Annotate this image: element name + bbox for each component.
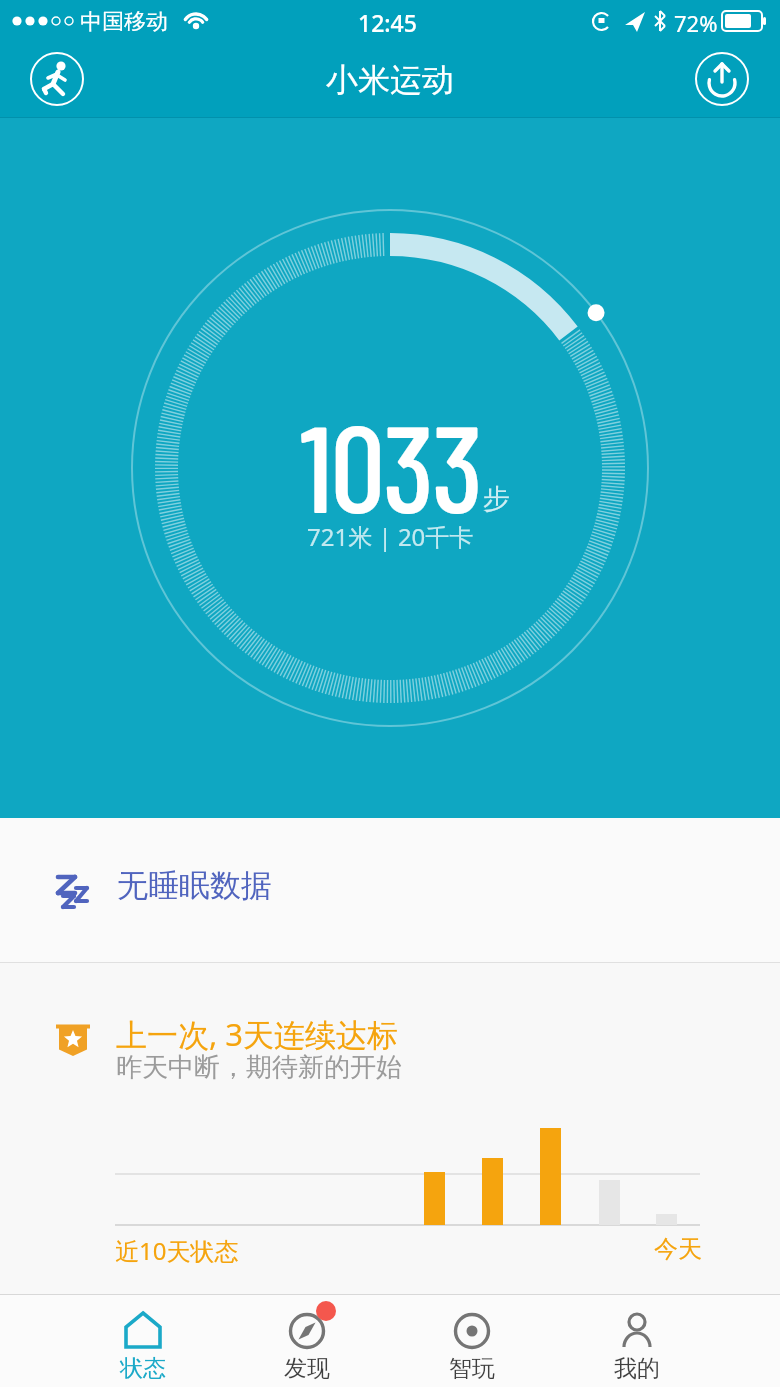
staticText: 中国移动 (80, 8, 168, 36)
button[interactable] (30, 52, 84, 106)
staticText: 721米 | 20千卡 (307, 520, 474, 553)
staticText: 状态 (120, 1354, 166, 1383)
staticText: 小米运动 (326, 60, 454, 100)
staticText: 智玩 (449, 1354, 495, 1383)
staticText: 近10天状态 (115, 1234, 239, 1267)
button[interactable]: 上一次, 3天连续达标 (0, 963, 780, 1103)
staticText: 1033 (300, 391, 481, 537)
staticText: 72% (674, 8, 718, 38)
button[interactable]: 无睡眠数据 (0, 818, 780, 962)
button[interactable] (695, 52, 749, 106)
staticText: 步 (483, 482, 510, 516)
staticText: 昨天中断，期待新的开始 (116, 1051, 402, 1084)
staticText: 12:45 (358, 7, 417, 38)
staticText: 上一次, 3天连续达标 (116, 1013, 399, 1055)
staticText: 今天 (654, 1234, 702, 1264)
staticText: 无睡眠数据 (117, 866, 272, 905)
button[interactable]: 状态 (61, 1294, 225, 1387)
button[interactable]: 我的 (554, 1294, 719, 1387)
staticText: 发现 (284, 1354, 330, 1383)
staticText: 我的 (614, 1354, 660, 1383)
button[interactable]: 智玩 (389, 1294, 554, 1387)
button[interactable]: 发现 (225, 1294, 389, 1387)
